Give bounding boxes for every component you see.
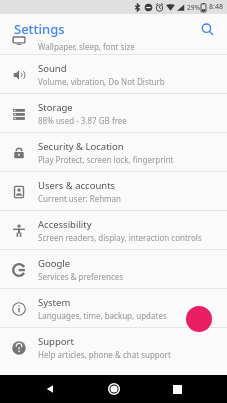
staticText: Storage — [38, 101, 73, 114]
button[interactable]: Search settings — [186, 306, 212, 332]
button[interactable]: Home — [100, 375, 128, 403]
button[interactable]: Wallpaper, sleep, font size — [0, 44, 227, 55]
button[interactable]: Accessibility — [0, 211, 227, 250]
staticText: Screen readers, display, interaction con… — [38, 232, 202, 243]
button[interactable]: Support — [0, 328, 227, 367]
button[interactable]: Security & Location — [0, 133, 227, 172]
staticText: 29% — [187, 3, 200, 12]
button[interactable]: Settings — [14, 20, 65, 38]
button[interactable]: Sound — [0, 55, 227, 94]
staticText: Play Protect, screen lock, fingerprint — [38, 154, 174, 165]
staticText: Help articles, phone & chat support — [38, 349, 171, 360]
staticText: Google — [38, 257, 71, 270]
staticText: Support — [38, 335, 74, 348]
button[interactable]: Search — [195, 17, 219, 41]
button[interactable]: Recent apps — [163, 375, 191, 403]
staticText: Settings — [14, 20, 65, 38]
staticText: Services & preferences — [38, 271, 124, 282]
staticText: Accessibility — [38, 218, 92, 231]
button[interactable]: Storage — [0, 94, 227, 133]
staticText: Current user: Rehman — [38, 193, 122, 204]
staticText: 88% used - 3.87 GB free — [38, 115, 127, 126]
staticText: Users & accounts — [38, 179, 116, 192]
button[interactable]: Users & accounts — [0, 172, 227, 211]
button[interactable]: Google — [0, 250, 227, 289]
staticText: 8:48 — [209, 2, 223, 12]
staticText: Sound — [38, 62, 67, 75]
staticText: Wallpaper, sleep, font size — [38, 41, 135, 52]
button[interactable]: System — [0, 289, 227, 328]
staticText: Languages, time, backup, updates — [38, 310, 167, 321]
staticText: Security & Location — [38, 140, 124, 153]
staticText: System — [38, 296, 71, 309]
button[interactable]: Back — [36, 375, 64, 403]
staticText: Volume, vibration, Do Not Disturb — [38, 76, 165, 87]
